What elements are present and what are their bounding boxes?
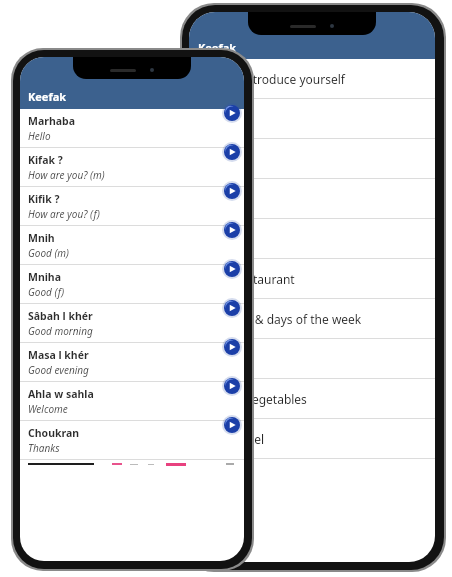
button[interactable]: Kifak ? — [20, 148, 244, 187]
button[interactable]: Fruits & vegetables — [189, 379, 435, 419]
staticText: Good (f) — [28, 285, 65, 299]
staticText: In the hotel — [199, 431, 265, 447]
staticText: Colors — [199, 351, 235, 367]
staticText: Good morning — [28, 324, 93, 338]
button[interactable]: Courtesy — [189, 99, 435, 139]
staticText: Travelling — [199, 191, 254, 207]
staticText: Keefak — [198, 40, 237, 55]
button[interactable]: Play pronunciation — [222, 259, 242, 279]
staticText: Shopping — [199, 231, 253, 247]
staticText: Sâbah l khér — [28, 309, 93, 323]
button[interactable]: Play pronunciation — [222, 415, 242, 435]
button[interactable]: Marhaba — [20, 109, 244, 148]
staticText: Meeting — [199, 151, 246, 167]
button[interactable]: Play pronunciation — [222, 337, 242, 357]
button[interactable]: Ahla w sahla — [20, 382, 244, 421]
button[interactable]: Travelling — [189, 179, 435, 219]
button[interactable]: Play pronunciation — [222, 298, 242, 318]
button[interactable]: In the hotel — [189, 419, 435, 459]
staticText: Welcome — [28, 402, 68, 416]
button[interactable]: Meeting — [189, 139, 435, 179]
staticText: How to introduce yourself — [199, 71, 345, 87]
staticText: At the restaurant — [199, 271, 295, 287]
staticText: Marhaba — [28, 114, 75, 128]
button[interactable]: Numbers & days of the week — [189, 299, 435, 339]
staticText: Good evening — [28, 363, 89, 377]
button[interactable]: At the restaurant — [189, 259, 435, 299]
button[interactable]: Sâbah l khér — [20, 304, 244, 343]
staticText: Numbers & days of the week — [199, 311, 362, 327]
button[interactable]: Play pronunciation — [222, 376, 242, 396]
staticText: Choukran — [28, 426, 80, 440]
staticText: Mnih — [28, 231, 55, 245]
button[interactable]: Masa l khér — [20, 343, 244, 382]
staticText: Keefak — [28, 89, 67, 104]
button[interactable]: Shopping — [189, 219, 435, 259]
staticText: Kifik ? — [28, 192, 60, 206]
staticText: Kifak ? — [28, 153, 63, 167]
staticText: Masa l khér — [28, 348, 89, 362]
button[interactable]: Play pronunciation — [222, 103, 242, 123]
button[interactable]: Play pronunciation — [222, 220, 242, 240]
staticText: How are you? (m) — [28, 168, 105, 182]
button[interactable]: Play pronunciation — [222, 142, 242, 162]
staticText: Ahla w sahla — [28, 387, 94, 401]
staticText: Good (m) — [28, 246, 69, 260]
button[interactable]: Mniha — [20, 265, 244, 304]
button[interactable]: Choukran — [20, 421, 244, 460]
staticText: Hello — [28, 129, 51, 143]
button[interactable]: Colors — [189, 339, 435, 379]
staticText: Fruits & vegetables — [199, 391, 307, 407]
staticText: Mniha — [28, 270, 61, 284]
button[interactable]: How to introduce yourself — [189, 59, 435, 99]
staticText: Thanks — [28, 441, 60, 455]
staticText: How are you? (f) — [28, 207, 100, 221]
staticText: Courtesy — [199, 111, 250, 127]
button[interactable]: Kifik ? — [20, 187, 244, 226]
button[interactable]: Mnih — [20, 226, 244, 265]
button[interactable]: Play pronunciation — [222, 181, 242, 201]
